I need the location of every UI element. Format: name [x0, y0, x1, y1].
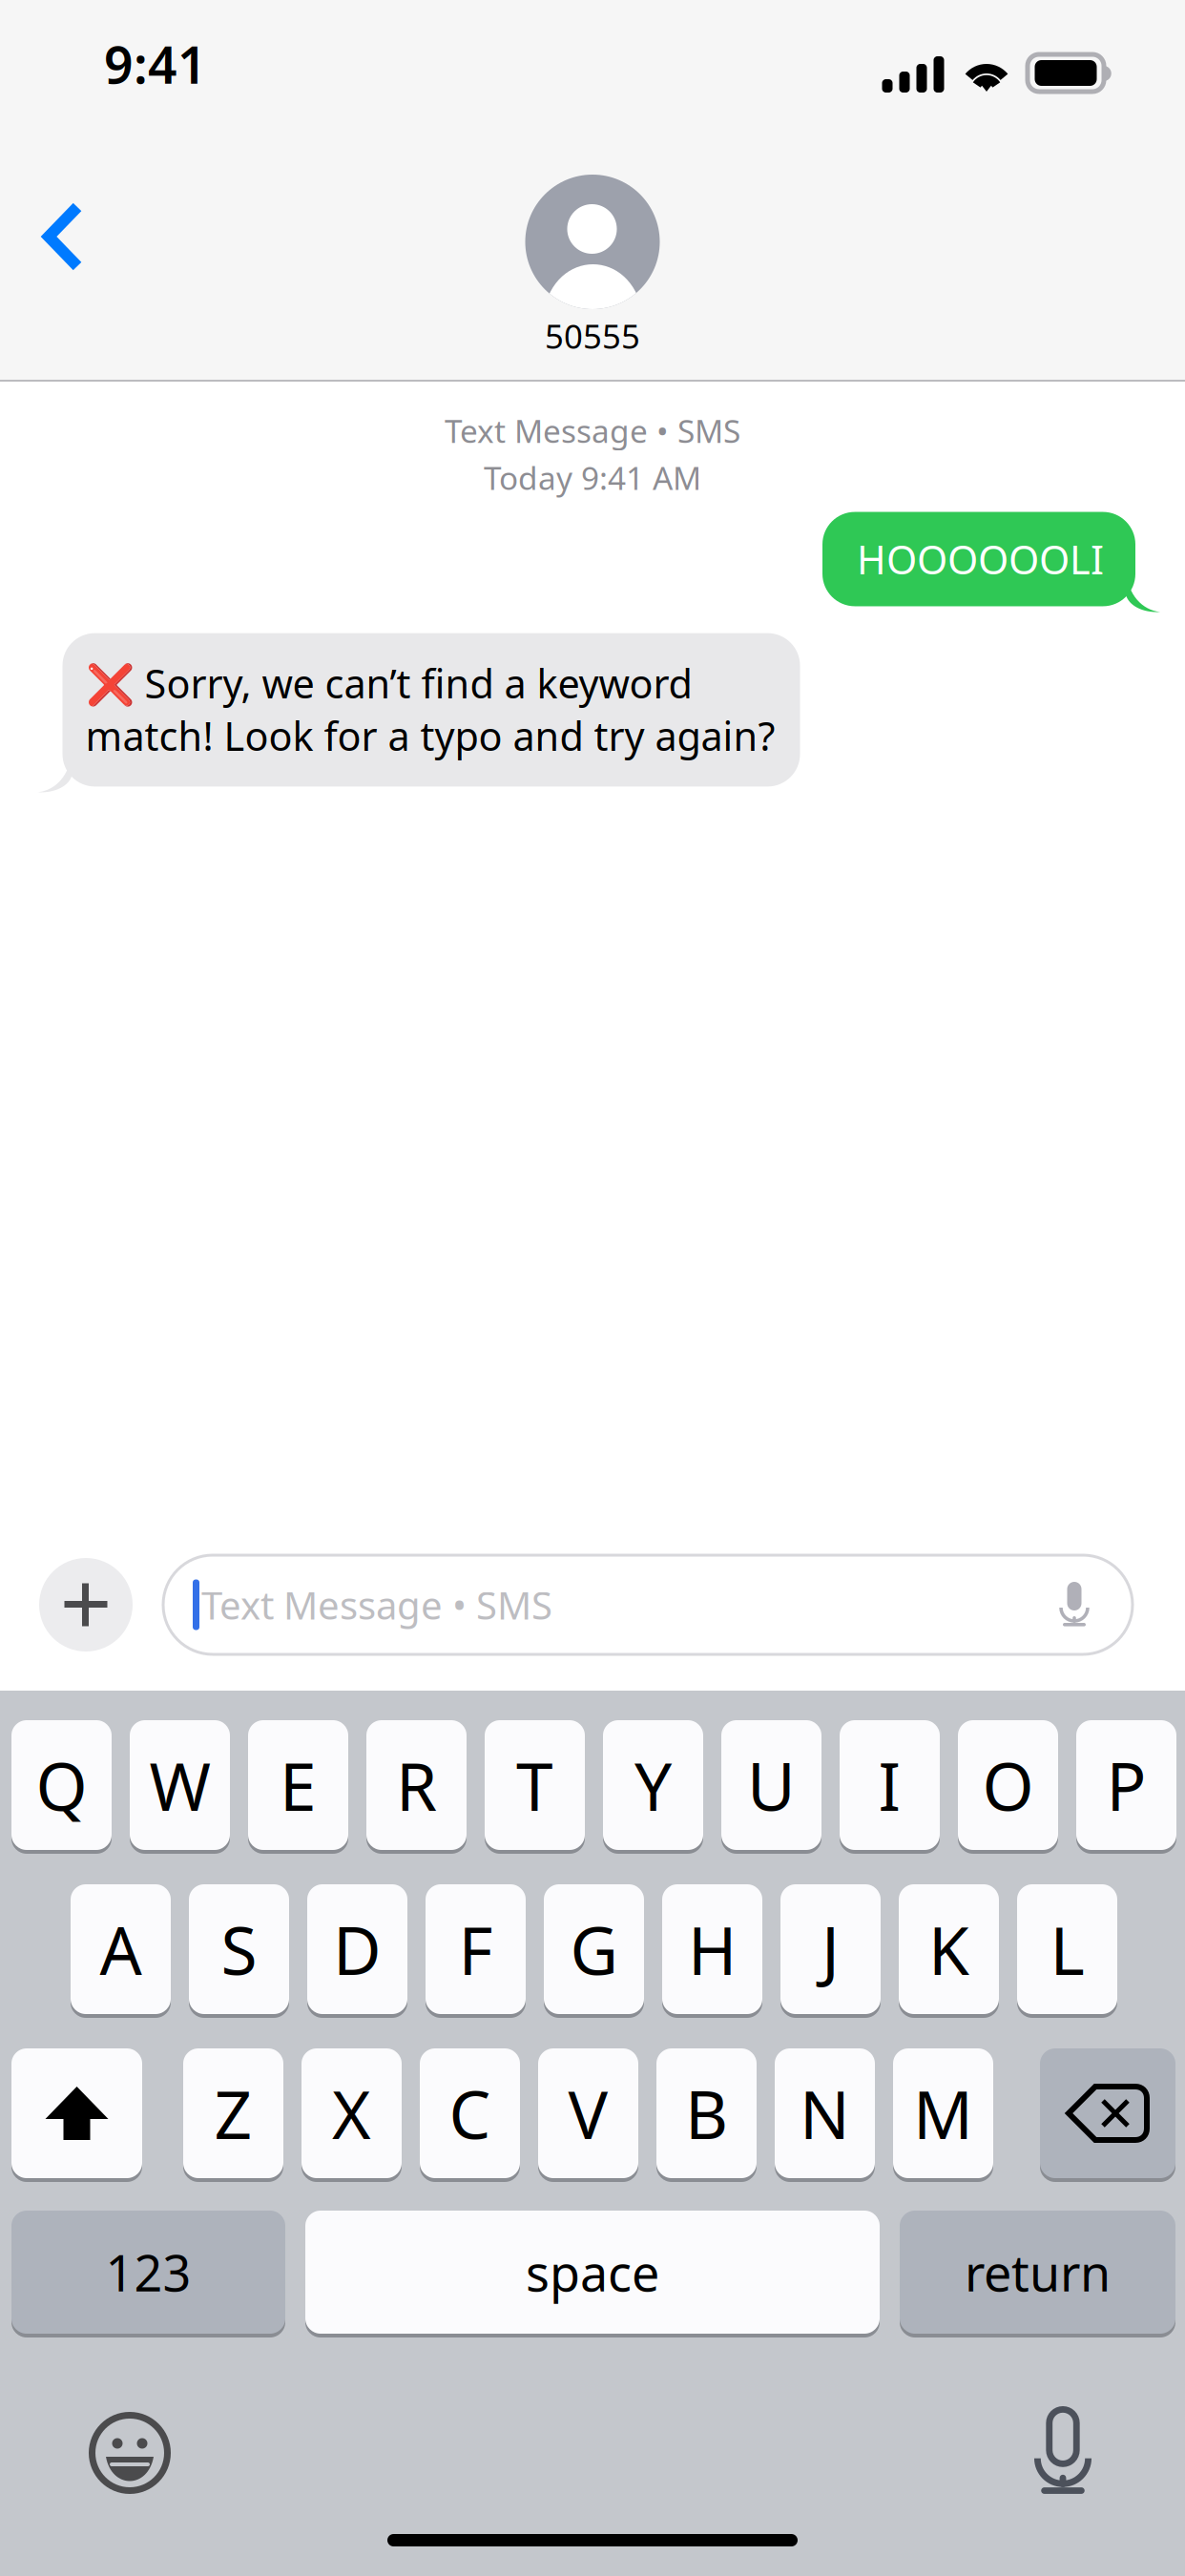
- staticText: V: [568, 2069, 608, 2157]
- button[interactable]: O: [958, 1718, 1058, 1852]
- staticText: R: [396, 1741, 437, 1829]
- button[interactable]: Attach: [39, 1558, 133, 1652]
- button[interactable]: B: [656, 2046, 757, 2180]
- staticText: W: [149, 1741, 210, 1829]
- staticText: ❌ Sorry, we can’t find a keyword match! …: [85, 657, 775, 762]
- staticText: I: [878, 1741, 901, 1829]
- button[interactable]: 123: [11, 2209, 285, 2336]
- button[interactable]: I: [840, 1718, 940, 1852]
- button[interactable]: H: [662, 1882, 762, 2016]
- staticText: D: [333, 1905, 382, 1993]
- button[interactable]: Dictation: [1017, 2407, 1109, 2499]
- staticText: Z: [214, 2069, 252, 2157]
- staticText: N: [800, 2069, 850, 2157]
- staticText: M: [913, 2069, 973, 2157]
- staticText: G: [570, 1905, 618, 1993]
- staticText: H: [688, 1905, 737, 1993]
- button[interactable]: G: [544, 1882, 644, 2016]
- button[interactable]: 50555: [440, 175, 745, 365]
- staticText: 123: [105, 2239, 191, 2305]
- staticText: U: [747, 1741, 796, 1829]
- staticText: O: [982, 1741, 1034, 1829]
- button[interactable]: Emoji keyboard: [84, 2407, 176, 2499]
- button[interactable]: T: [485, 1718, 585, 1852]
- staticText: space: [526, 2239, 659, 2305]
- button[interactable]: K: [899, 1882, 999, 2016]
- staticText: Q: [36, 1741, 87, 1829]
- button[interactable]: return: [900, 2209, 1175, 2336]
- staticText: Text Message • SMS: [201, 1579, 552, 1630]
- button[interactable]: W: [130, 1718, 230, 1852]
- button[interactable]: Back: [1, 175, 125, 299]
- staticText: B: [685, 2069, 728, 2157]
- staticText: return: [965, 2239, 1111, 2305]
- staticText: K: [928, 1905, 969, 1993]
- staticText: Today 9:41 AM: [484, 457, 701, 499]
- staticText: Y: [634, 1741, 672, 1829]
- button[interactable]: E: [248, 1718, 348, 1852]
- staticText: HOOOOOOLI: [857, 533, 1104, 585]
- button[interactable]: A: [71, 1882, 171, 2016]
- button[interactable]: Y: [603, 1718, 703, 1852]
- button[interactable]: Delete: [1040, 2046, 1175, 2180]
- button[interactable]: P: [1076, 1718, 1176, 1852]
- button[interactable]: Shift: [11, 2046, 142, 2180]
- staticText: X: [332, 2069, 371, 2157]
- staticText: E: [280, 1741, 317, 1829]
- staticText: C: [449, 2069, 491, 2157]
- staticText: T: [516, 1741, 553, 1829]
- button[interactable]: D: [307, 1882, 407, 2016]
- button[interactable]: F: [426, 1882, 526, 2016]
- staticText: L: [1050, 1905, 1084, 1993]
- button[interactable]: M: [893, 2046, 993, 2180]
- button[interactable]: S: [189, 1882, 289, 2016]
- button[interactable]: Z: [183, 2046, 283, 2180]
- button[interactable]: Text Message SMS input field: [163, 1555, 1133, 1654]
- button[interactable]: U: [721, 1718, 821, 1852]
- button[interactable]: X: [301, 2046, 402, 2180]
- button[interactable]: C: [420, 2046, 520, 2180]
- staticText: 9:41: [104, 30, 207, 98]
- staticText: Text Message • SMS: [445, 409, 740, 452]
- staticText: A: [100, 1905, 142, 1993]
- staticText: S: [221, 1905, 257, 1993]
- staticText: 50555: [545, 314, 640, 358]
- button[interactable]: Q: [11, 1718, 112, 1852]
- button[interactable]: V: [538, 2046, 638, 2180]
- button[interactable]: L: [1017, 1882, 1117, 2016]
- button[interactable]: N: [775, 2046, 875, 2180]
- button[interactable]: space: [305, 2209, 880, 2336]
- staticText: F: [458, 1905, 493, 1993]
- button[interactable]: J: [780, 1882, 881, 2016]
- staticText: P: [1106, 1741, 1146, 1829]
- staticText: J: [821, 1905, 840, 1993]
- button[interactable]: R: [366, 1718, 467, 1852]
